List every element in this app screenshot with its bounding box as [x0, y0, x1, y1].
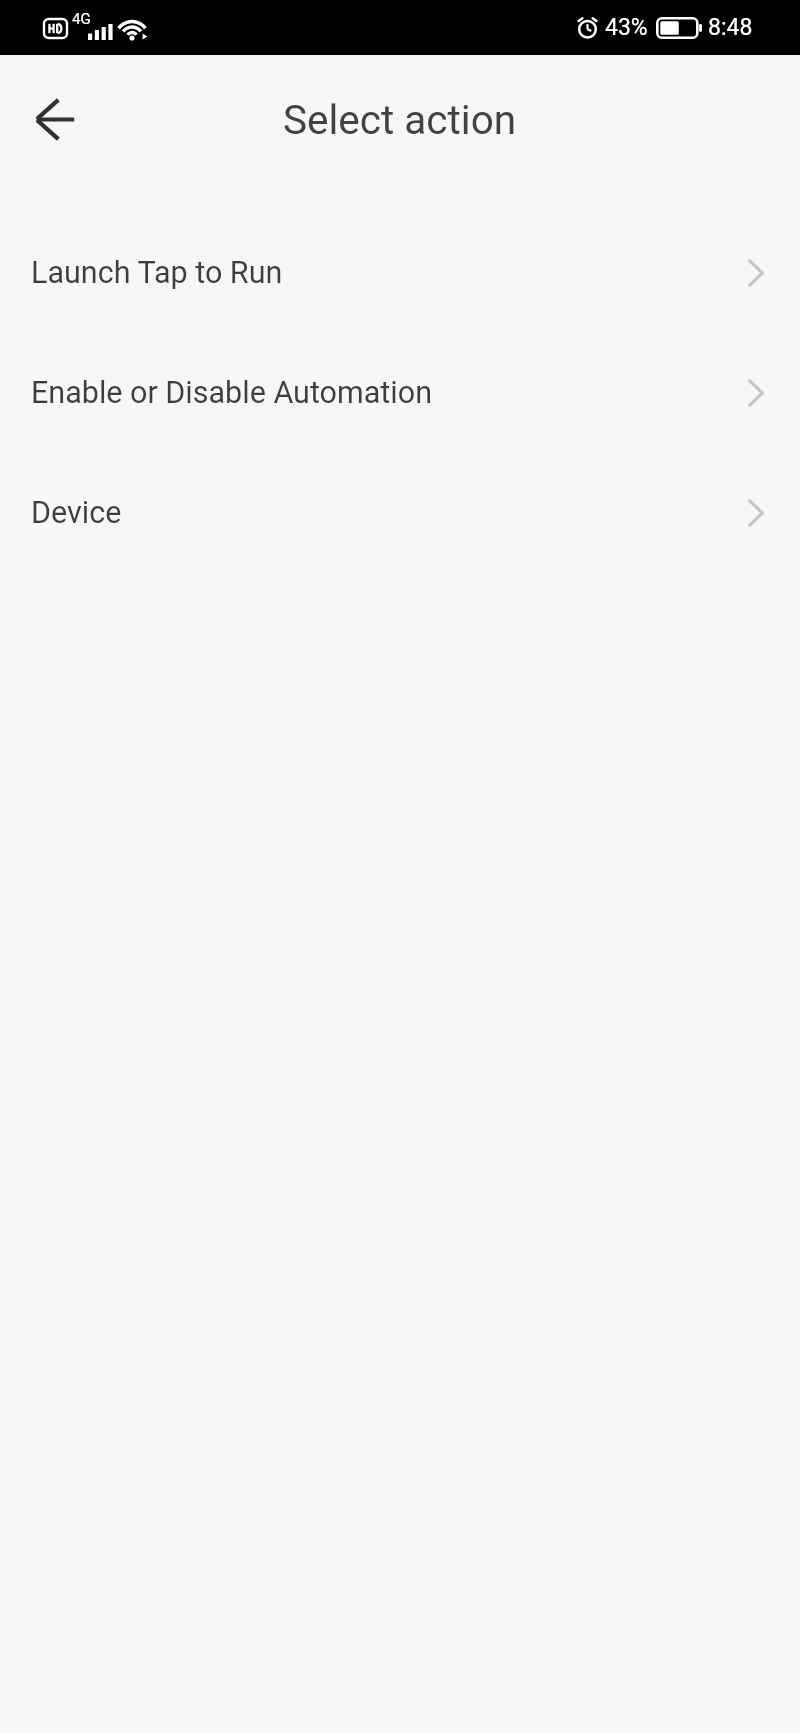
staticText: Launch Tap to Run [31, 255, 283, 291]
staticText: 4G [72, 10, 91, 28]
button[interactable]: Device [0, 453, 800, 573]
button[interactable] [26, 90, 84, 148]
staticText: Select action [283, 96, 517, 143]
staticText: Device [31, 495, 122, 531]
button[interactable]: Enable or Disable Automation [0, 333, 800, 453]
button[interactable]: Launch Tap to Run [0, 213, 800, 333]
staticText: Enable or Disable Automation [31, 375, 432, 411]
staticText: 43% [605, 14, 648, 41]
staticText: 8:48 [708, 14, 753, 41]
